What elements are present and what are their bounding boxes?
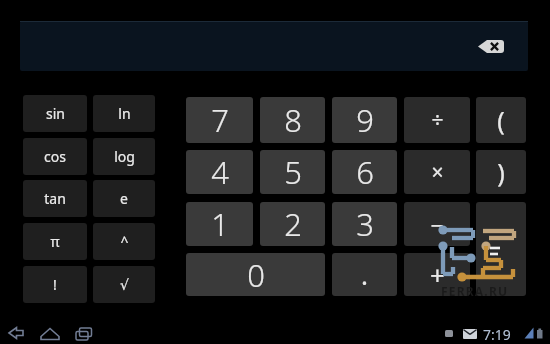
staticText: ÷ <box>431 106 444 135</box>
staticText: ( <box>497 103 505 137</box>
button[interactable]: 1 <box>186 202 253 246</box>
button[interactable]: 5 <box>260 150 325 194</box>
button[interactable]: 9 <box>332 97 397 143</box>
button[interactable]: ln <box>93 95 155 132</box>
staticText: + <box>430 257 445 292</box>
button[interactable]: cos <box>23 138 87 175</box>
button[interactable]: ! <box>23 266 87 303</box>
staticText: 8 <box>284 99 302 141</box>
staticText: 9 <box>356 99 374 141</box>
button[interactable] <box>476 202 526 296</box>
button[interactable]: + <box>404 253 470 296</box>
staticText: ! <box>53 275 57 294</box>
button[interactable]: 4 <box>186 150 253 194</box>
staticText: 3 <box>356 203 374 245</box>
button[interactable]: − <box>404 202 470 246</box>
staticText: cos <box>44 147 66 166</box>
button[interactable] <box>20 21 528 71</box>
staticText: × <box>431 158 444 187</box>
button[interactable]: ^ <box>93 223 155 260</box>
staticText: 7:19 <box>483 325 511 344</box>
button[interactable]: 2 <box>260 202 325 246</box>
staticText: tan <box>44 189 66 208</box>
staticText: sin <box>46 104 65 123</box>
button[interactable]: . <box>332 253 397 296</box>
staticText: FERRA.RU <box>441 283 509 299</box>
staticText: 6 <box>356 151 374 193</box>
staticText: 1 <box>211 203 229 245</box>
staticText: √ <box>120 277 129 293</box>
staticText: 5 <box>284 151 302 193</box>
button[interactable]: 6 <box>332 150 397 194</box>
button[interactable]: ) <box>476 150 526 194</box>
staticText: 2 <box>284 203 302 245</box>
button[interactable]: tan <box>23 180 87 217</box>
button[interactable]: √ <box>93 266 155 303</box>
staticText: log <box>114 147 135 166</box>
staticText: 7 <box>211 99 229 141</box>
staticText: ln <box>118 104 131 123</box>
button[interactable]: 0 <box>186 253 325 296</box>
button[interactable]: ( <box>476 97 526 143</box>
button[interactable]: ÷ <box>404 97 470 143</box>
staticText: e <box>120 189 128 208</box>
button[interactable]: e <box>93 180 155 217</box>
button[interactable]: log <box>93 138 155 175</box>
staticText: ^ <box>120 232 129 251</box>
staticText: 0 <box>247 254 265 296</box>
staticText: . <box>361 257 368 292</box>
staticText: − <box>430 209 444 240</box>
staticText: ) <box>497 155 505 189</box>
button[interactable]: 3 <box>332 202 397 246</box>
button[interactable]: 8 <box>260 97 325 143</box>
button[interactable]: × <box>404 150 470 194</box>
button[interactable]: π <box>23 223 87 260</box>
staticText: 4 <box>211 151 229 193</box>
button[interactable]: 7 <box>186 97 253 143</box>
button[interactable]: sin <box>23 95 87 132</box>
staticText: π <box>50 232 60 251</box>
